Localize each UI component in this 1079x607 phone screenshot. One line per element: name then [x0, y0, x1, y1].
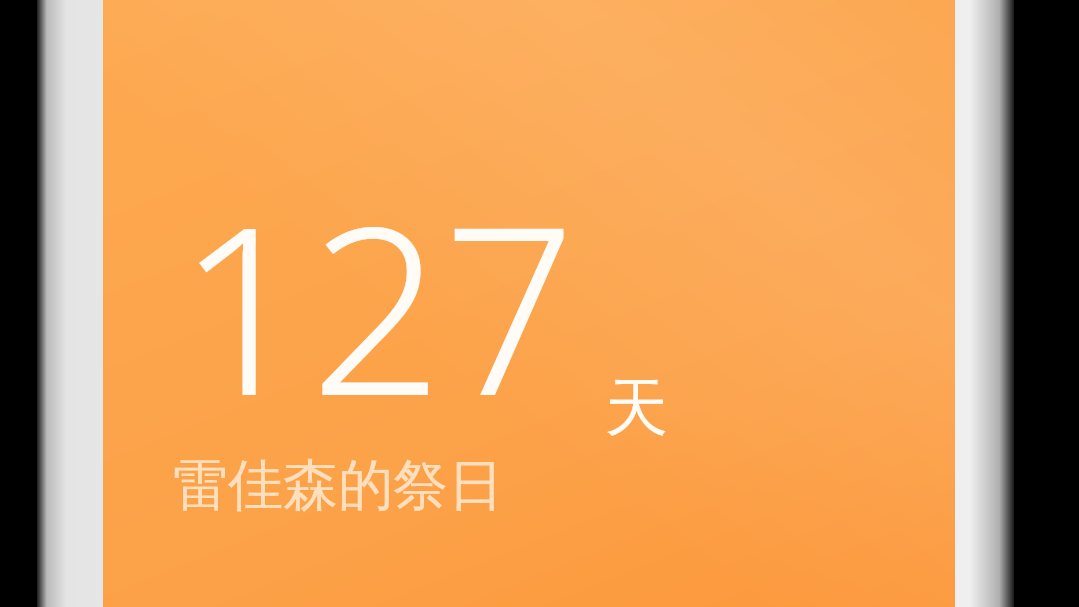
staticText: 127: [177, 146, 577, 463]
staticText: 雷佳森的祭日: [173, 451, 503, 520]
staticText: 天: [605, 368, 668, 447]
button[interactable]: Countdown: 127 days until 雷佳森的祭日: [103, 0, 955, 607]
